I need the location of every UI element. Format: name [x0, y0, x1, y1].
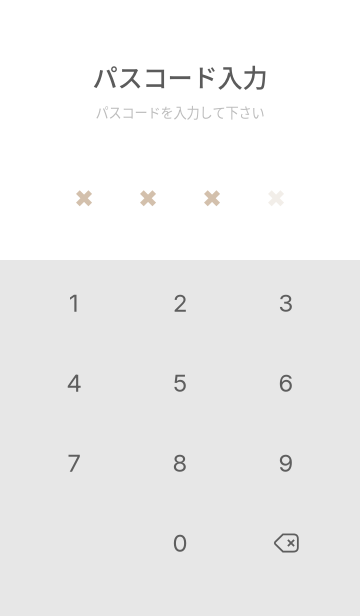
- button[interactable]: 5: [127, 343, 233, 423]
- staticText: ✖: [74, 185, 94, 212]
- staticText: 8: [172, 448, 187, 477]
- staticText: 5: [173, 368, 187, 397]
- staticText: ✖: [138, 185, 158, 212]
- button[interactable]: 4: [21, 343, 127, 423]
- staticText: 9: [278, 448, 293, 477]
- button[interactable]: 8: [127, 423, 233, 503]
- button[interactable]: 0: [127, 503, 233, 583]
- staticText: 6: [278, 368, 293, 397]
- staticText: ✖: [266, 185, 286, 212]
- button[interactable]: 7: [21, 423, 127, 503]
- button[interactable]: Delete: [233, 503, 339, 583]
- staticText: 3: [278, 288, 293, 317]
- staticText: パスコードを入力して下さい: [95, 102, 264, 122]
- button[interactable]: 2: [127, 263, 233, 343]
- staticText: 1: [69, 288, 79, 317]
- button[interactable]: 6: [233, 343, 339, 423]
- staticText: 0: [172, 528, 187, 557]
- staticText: 7: [67, 448, 80, 477]
- button[interactable]: 1: [21, 263, 127, 343]
- staticText: 4: [66, 368, 81, 397]
- button[interactable]: 3: [233, 263, 339, 343]
- staticText: ✖: [202, 185, 222, 212]
- staticText: パスコード入力: [92, 58, 267, 94]
- staticText: 2: [173, 288, 187, 317]
- button[interactable]: 9: [233, 423, 339, 503]
